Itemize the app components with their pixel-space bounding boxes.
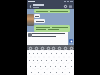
button[interactable]: Key	[69, 57, 74, 63]
button[interactable]: Key	[53, 69, 59, 75]
button[interactable]: Key	[27, 57, 31, 63]
button[interactable]: Key	[68, 63, 74, 69]
button[interactable]: More options	[68, 4, 73, 9]
button[interactable]: Key	[48, 63, 53, 69]
button[interactable]: Key	[63, 63, 68, 69]
button[interactable]: Key	[49, 50, 54, 57]
button[interactable]: Key	[54, 57, 59, 63]
button[interactable]: Key	[44, 57, 49, 63]
button[interactable]: Back	[28, 4, 33, 9]
button[interactable]: Key	[31, 50, 35, 57]
button[interactable]: Key	[33, 63, 38, 69]
button[interactable]: Tool 5	[57, 46, 61, 50]
button[interactable]: Key	[31, 57, 35, 63]
button[interactable]: Key	[47, 69, 53, 75]
button[interactable]: Tool 6	[63, 46, 67, 50]
button[interactable]: Photo	[27, 14, 34, 26]
button[interactable]: Key	[39, 57, 44, 63]
button[interactable]	[34, 19, 45, 23]
button[interactable]: Key	[59, 50, 64, 57]
button[interactable]: Key	[44, 50, 49, 57]
button[interactable]: Key	[64, 57, 69, 63]
button[interactable]: Key	[35, 69, 41, 75]
button[interactable]: Key	[35, 57, 39, 63]
button[interactable]: Key	[39, 50, 44, 57]
button[interactable]: Key	[54, 50, 59, 57]
button[interactable]	[34, 14, 40, 18]
button[interactable]: Tool 0	[28, 46, 32, 50]
button[interactable]: Tool 4	[51, 46, 55, 50]
button[interactable]: Key	[35, 50, 39, 57]
button[interactable]: Key	[58, 63, 63, 69]
button[interactable]: Key	[27, 63, 33, 69]
button[interactable]: Key	[27, 50, 31, 57]
button[interactable]: Tool 3	[46, 46, 50, 50]
button[interactable]: Key	[43, 63, 48, 69]
button[interactable]	[34, 25, 70, 32]
button[interactable]: Send	[69, 39, 73, 43]
button[interactable]: Key	[59, 69, 65, 75]
button[interactable]: Key	[38, 63, 43, 69]
button[interactable]: Tool 1	[34, 46, 38, 50]
button[interactable]: Tool 7	[69, 46, 73, 50]
button[interactable]: Tool 2	[40, 46, 44, 50]
button[interactable]	[34, 9, 70, 13]
button[interactable]: Search	[63, 4, 68, 9]
button[interactable]: Key	[69, 50, 74, 57]
button[interactable]: Key	[27, 69, 35, 75]
button[interactable]: Key	[64, 50, 69, 57]
button[interactable]: Key	[41, 69, 47, 75]
button[interactable]: Key	[65, 69, 74, 75]
button[interactable]: Key	[53, 63, 58, 69]
button[interactable]: Key	[59, 57, 64, 63]
button[interactable]: Key	[49, 57, 54, 63]
